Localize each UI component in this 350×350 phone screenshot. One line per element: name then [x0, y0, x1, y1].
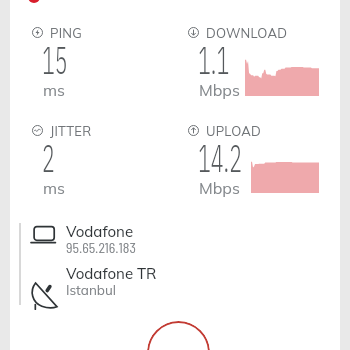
staticText: JITTER	[50, 123, 92, 139]
staticText: Vodafone	[66, 222, 134, 241]
staticText: 14.2	[198, 134, 242, 182]
staticText: PING	[50, 25, 82, 41]
staticText: Mbps	[199, 80, 240, 100]
staticText: Vodafone TR	[66, 264, 157, 283]
staticText: Istanbul	[66, 281, 116, 298]
staticText: 95.65.216.183	[66, 239, 136, 256]
button[interactable]: Vodafone TR	[10, 256, 340, 298]
staticText: DOWNLOAD	[206, 25, 288, 41]
button[interactable]: Vodafone	[10, 214, 340, 256]
staticText: UPLOAD	[206, 123, 261, 139]
staticText: ms	[43, 178, 65, 198]
staticText: ms	[43, 80, 65, 100]
staticText: Mbps	[199, 178, 240, 198]
staticText: 1.1	[198, 36, 229, 84]
button[interactable]: Go again	[147, 321, 210, 350]
staticText: 15	[42, 36, 68, 84]
staticText: 2	[42, 134, 55, 182]
